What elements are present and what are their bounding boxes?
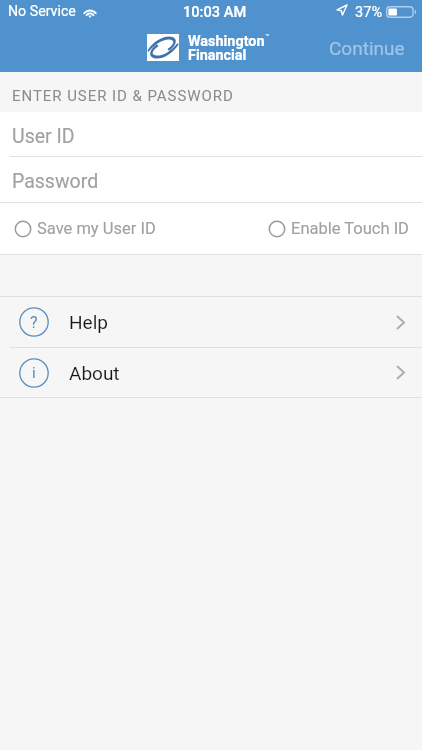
button[interactable]: ? <box>0 297 422 347</box>
staticText: ™ <box>265 33 270 41</box>
staticText: Financial <box>188 47 247 64</box>
staticText: About <box>69 362 120 384</box>
staticText: ENTER USER ID & PASSWORD <box>12 87 234 105</box>
button[interactable]: i <box>0 348 422 397</box>
staticText: 37% <box>355 3 383 20</box>
button[interactable]: Password <box>0 157 422 202</box>
staticText: Save my User ID <box>37 219 156 238</box>
button[interactable]: Save my User ID <box>14 219 156 238</box>
button[interactable]: Continue <box>317 31 417 65</box>
staticText: User ID <box>12 125 75 148</box>
staticText: Continue <box>329 37 405 59</box>
other: Wi-Fi <box>82 6 98 18</box>
staticText: Password <box>12 170 99 193</box>
other: Battery 37 percent <box>386 6 416 18</box>
staticText: i <box>32 364 36 382</box>
button[interactable]: User ID <box>0 112 422 156</box>
staticText: No Service <box>8 3 76 20</box>
staticText: 10:03 AM <box>183 3 247 20</box>
staticText: Washington <box>188 33 265 50</box>
staticText: Enable Touch ID <box>291 219 409 238</box>
button[interactable]: Enable Touch ID <box>268 219 409 238</box>
staticText: Help <box>69 311 108 333</box>
staticText: ? <box>30 313 38 332</box>
